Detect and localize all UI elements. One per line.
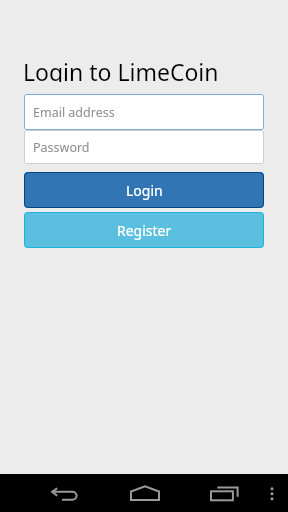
button[interactable]: Recent apps xyxy=(185,474,265,512)
button[interactable]: Email address xyxy=(24,94,264,130)
button[interactable]: Register xyxy=(24,212,264,248)
button[interactable]: Login xyxy=(24,172,264,208)
staticText: Email address xyxy=(33,104,115,121)
button[interactable]: Password xyxy=(24,130,264,164)
button[interactable]: Home xyxy=(99,474,191,512)
button[interactable]: Back xyxy=(18,474,110,512)
staticText: Password xyxy=(33,139,90,156)
staticText: Login xyxy=(126,181,163,200)
staticText: Register xyxy=(117,221,172,240)
staticText: Login to LimeCoin xyxy=(23,56,219,82)
button[interactable]: More options xyxy=(260,474,284,512)
